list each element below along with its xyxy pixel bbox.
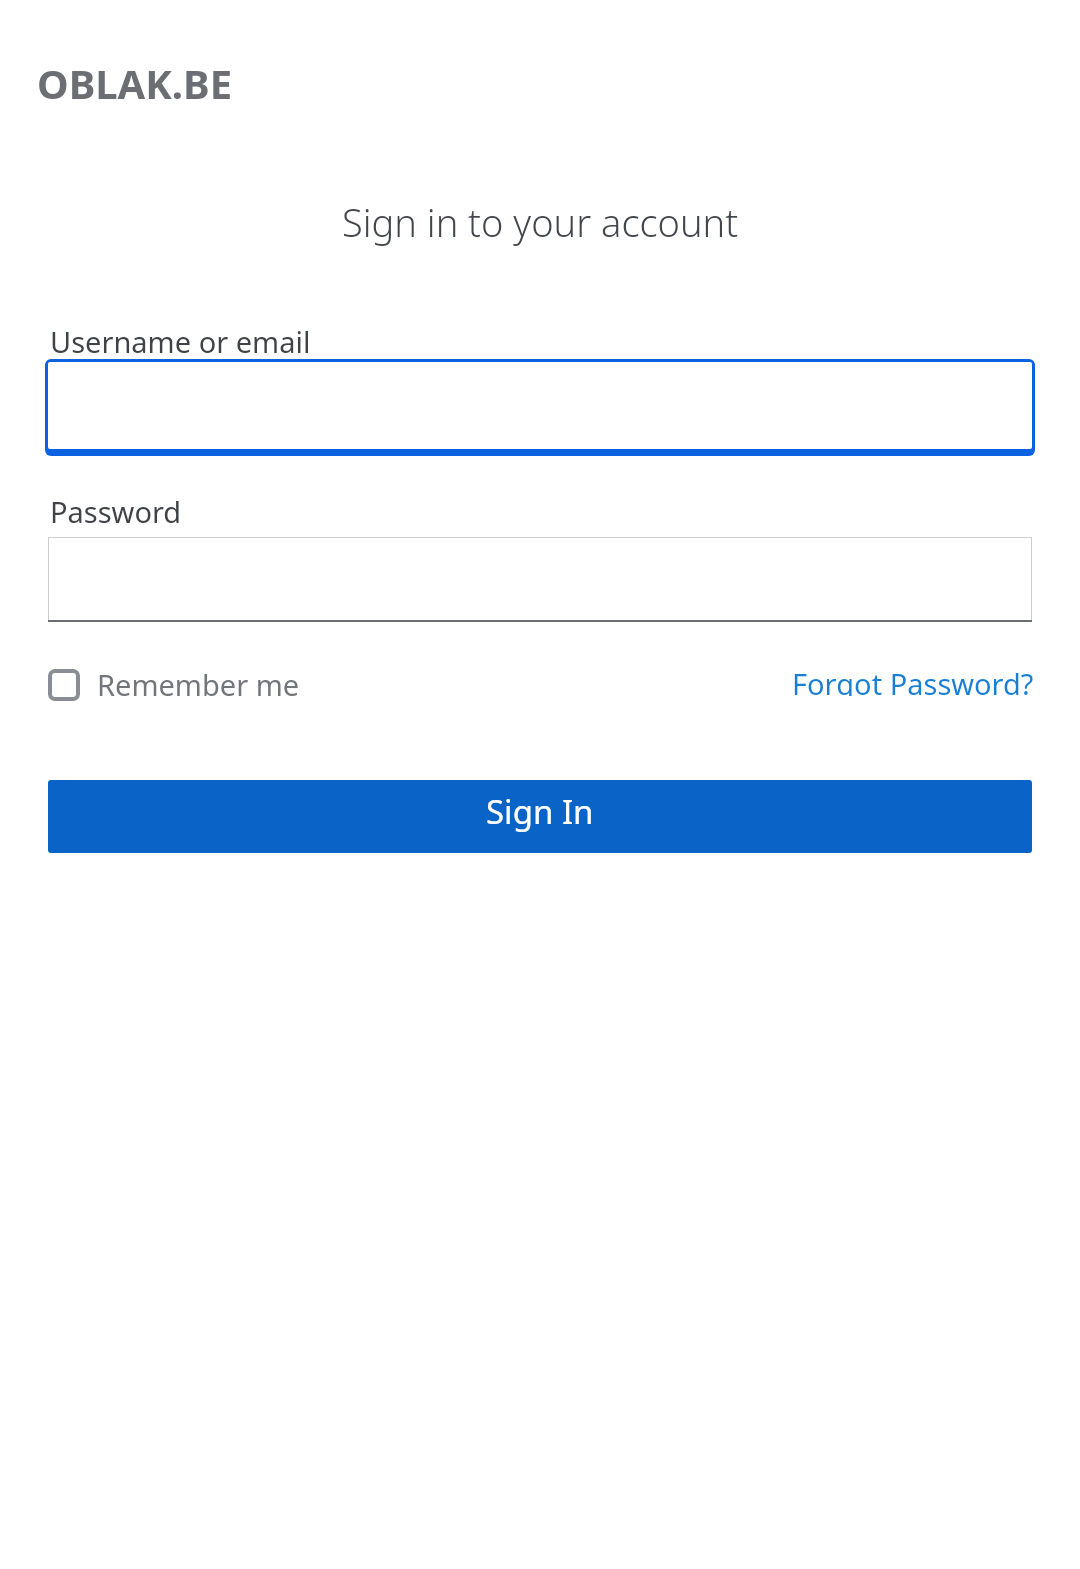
staticText: Forgot Password? bbox=[792, 664, 1034, 696]
staticText: OBLAK.BE bbox=[37, 56, 233, 110]
staticText: Remember me bbox=[97, 665, 300, 697]
staticText: Sign in to your account bbox=[342, 196, 739, 248]
staticText: Sign In bbox=[486, 789, 594, 834]
staticText: Password bbox=[50, 492, 182, 531]
staticText: Username or email bbox=[50, 322, 311, 361]
